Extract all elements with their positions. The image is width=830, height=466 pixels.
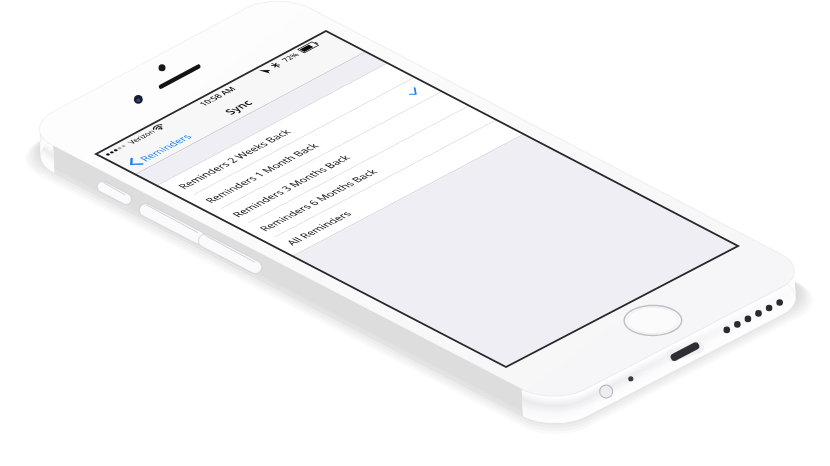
button[interactable] bbox=[0, 0, 830, 466]
